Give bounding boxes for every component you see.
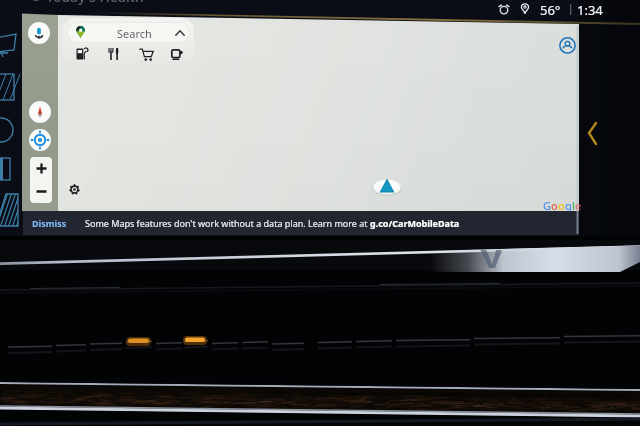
button[interactable]: Location — [519, 2, 531, 16]
button[interactable]: Alarm — [498, 2, 510, 16]
staticText: G — [543, 198, 551, 213]
button[interactable]: Coffee — [170, 46, 185, 62]
staticText: o — [551, 198, 558, 213]
button[interactable]: Dismiss — [32, 216, 80, 230]
button[interactable]: Restaurants — [106, 46, 121, 62]
staticText: e — [575, 198, 582, 213]
button[interactable]: Account — [559, 37, 576, 54]
button[interactable]: Compass — [29, 101, 51, 123]
button[interactable]: Gas stations — [75, 46, 90, 62]
staticText: 1:34 — [577, 1, 603, 19]
button[interactable]: Voice search — [28, 22, 50, 44]
button[interactable]: Settings — [65, 180, 84, 199]
button[interactable]: My location — [29, 129, 51, 151]
staticText: Today's Health — [46, 0, 144, 6]
staticText: g — [565, 198, 572, 213]
staticText: Some Maps features don't work without a … — [85, 217, 370, 229]
staticText: Search — [117, 26, 152, 41]
staticText: o — [558, 198, 565, 213]
button[interactable]: Zoom out — [30, 180, 52, 203]
staticText: Dismiss — [32, 217, 67, 229]
button[interactable]: Zoom in — [30, 157, 52, 180]
staticText: g.co/CarMobileData — [370, 217, 460, 229]
button[interactable]: Groceries — [139, 46, 154, 62]
staticText: l — [572, 198, 575, 213]
button[interactable]: Search — [67, 22, 190, 43]
staticText: 56° — [540, 1, 561, 19]
